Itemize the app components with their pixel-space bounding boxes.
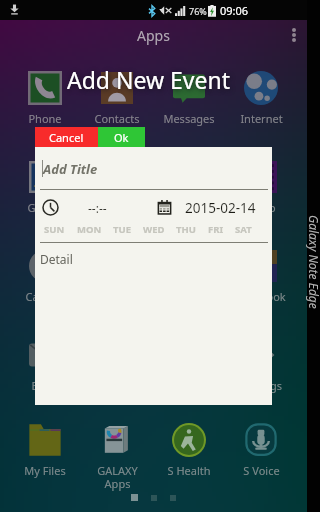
staticText: Settings [240,378,282,393]
staticText: Internet [240,111,283,126]
button[interactable]: Cancel [35,127,98,147]
button[interactable]: Messages [158,71,220,126]
button[interactable]: My Files [14,423,76,478]
button[interactable]: Email [14,338,76,393]
button[interactable]: Contacts [86,71,148,126]
button[interactable]: Camera [14,249,76,304]
staticText: Galaxy Note Edge [306,215,320,309]
button[interactable]: Add Title [43,160,98,178]
button[interactable]: FRI [208,223,224,236]
button[interactable]: SUN [44,223,65,236]
button[interactable]: S Health [158,423,220,478]
button[interactable]: S Voice [230,423,292,478]
staticText: S Health [167,463,211,478]
button[interactable]: THU [176,223,196,236]
button[interactable]: Video [230,160,292,215]
button[interactable]: Gallery [14,160,76,215]
staticText: My Files [24,463,66,478]
button[interactable]: More options [281,20,307,50]
button[interactable]: Facebook [230,249,292,304]
staticText: Gallery [27,200,64,215]
staticText: 09:06 [220,3,249,18]
staticText: Ok [114,130,129,145]
button[interactable]: Edge panel [307,0,320,512]
button[interactable]: SAT [235,223,252,236]
staticText: Email [31,378,60,393]
button[interactable]: Settings [230,338,292,393]
button[interactable]: WED [143,223,165,236]
staticText: GALAXY Apps [97,463,138,491]
button[interactable]: Ok [98,127,145,147]
staticText: Messages [163,111,215,126]
button[interactable]: Phone [14,71,76,126]
staticText: 76% [189,5,207,17]
staticText: Phone [28,111,62,126]
staticText: S Voice [243,463,280,478]
button[interactable]: TUE [113,223,131,236]
staticText: Contacts [94,111,140,126]
staticText: Apps [137,26,170,45]
staticText: Add New Event [67,64,230,95]
staticText: Video [246,200,276,215]
button[interactable]: MON [77,223,102,236]
staticText: Cancel [49,130,84,145]
button[interactable]: 2015-02-14 [185,199,256,217]
button[interactable]: GALAXY Apps [86,423,148,491]
staticText: Facebook [236,289,286,304]
button[interactable]: --:-- [88,200,107,216]
button[interactable]: Internet [230,71,292,126]
button[interactable]: Detail [40,251,73,267]
staticText: Camera [25,289,66,304]
